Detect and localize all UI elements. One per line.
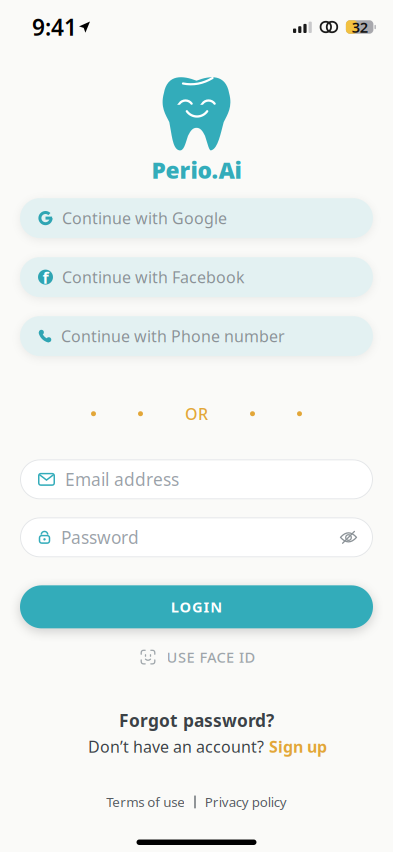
staticText: LOGIN xyxy=(171,597,222,617)
staticText: Continue with Google xyxy=(62,207,227,229)
button[interactable]: Continue with Google xyxy=(20,198,373,238)
staticText: Email address xyxy=(65,468,179,491)
staticText: OR xyxy=(185,403,208,424)
staticText: Terms of use xyxy=(106,793,185,811)
button[interactable]: Email address xyxy=(20,459,373,499)
staticText: Sign up xyxy=(269,736,327,757)
staticText: USE FACE ID xyxy=(166,647,255,667)
staticText: 9:41 xyxy=(32,12,77,42)
staticText: Forgot password? xyxy=(119,709,274,732)
staticText: Perio.Ai xyxy=(151,155,241,185)
button[interactable]: Password xyxy=(20,517,373,557)
staticText: f xyxy=(42,267,48,288)
staticText: Password xyxy=(61,526,139,549)
staticText: 32 xyxy=(352,17,368,37)
button[interactable]: Privacy policy xyxy=(205,793,287,811)
staticText: Privacy policy xyxy=(205,793,287,811)
button[interactable] xyxy=(340,532,357,543)
button[interactable]: Terms of use xyxy=(106,793,185,811)
button[interactable]: LOGIN xyxy=(20,585,373,628)
staticText: Don’t have an account? xyxy=(88,736,264,757)
staticText: Continue with Facebook xyxy=(62,266,245,288)
button[interactable]: USE FACE ID xyxy=(140,647,258,667)
button[interactable]: Sign up xyxy=(269,736,327,757)
button[interactable]: Forgot password? xyxy=(119,709,274,732)
button[interactable]: Continue with Phone number xyxy=(20,316,373,356)
button[interactable]: f xyxy=(20,257,373,297)
staticText: Continue with Phone number xyxy=(61,325,285,347)
